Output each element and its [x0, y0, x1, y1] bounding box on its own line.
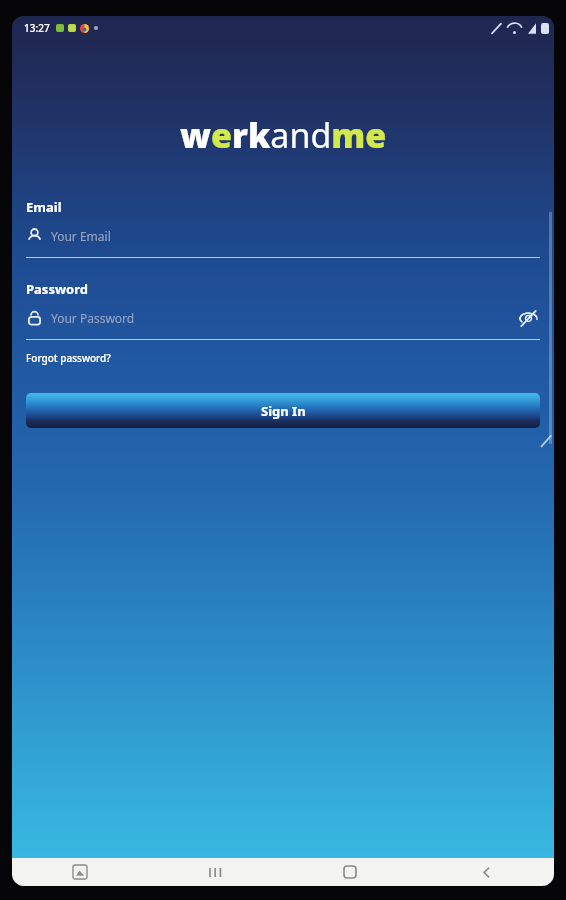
button[interactable]: Sign In — [26, 393, 540, 428]
button[interactable]: Show password — [516, 306, 540, 330]
staticText: werkandme — [180, 112, 387, 158]
staticText: Your Password — [51, 310, 135, 326]
staticText: 13:27 — [24, 21, 50, 35]
staticText: Password — [26, 280, 88, 298]
button[interactable]: Your Password — [26, 305, 540, 331]
staticText: Email — [26, 198, 62, 216]
button[interactable]: Your Email — [26, 223, 540, 249]
button[interactable]: Forgot password? — [26, 351, 111, 365]
staticText: Your Email — [51, 228, 111, 244]
button[interactable]: Screenshot — [12, 858, 147, 886]
button[interactable]: Recent apps — [147, 858, 282, 886]
staticText: Sign In — [261, 402, 306, 420]
button[interactable]: Home — [282, 858, 418, 886]
button[interactable]: Back — [418, 858, 554, 886]
staticText: Forgot password? — [26, 351, 111, 365]
